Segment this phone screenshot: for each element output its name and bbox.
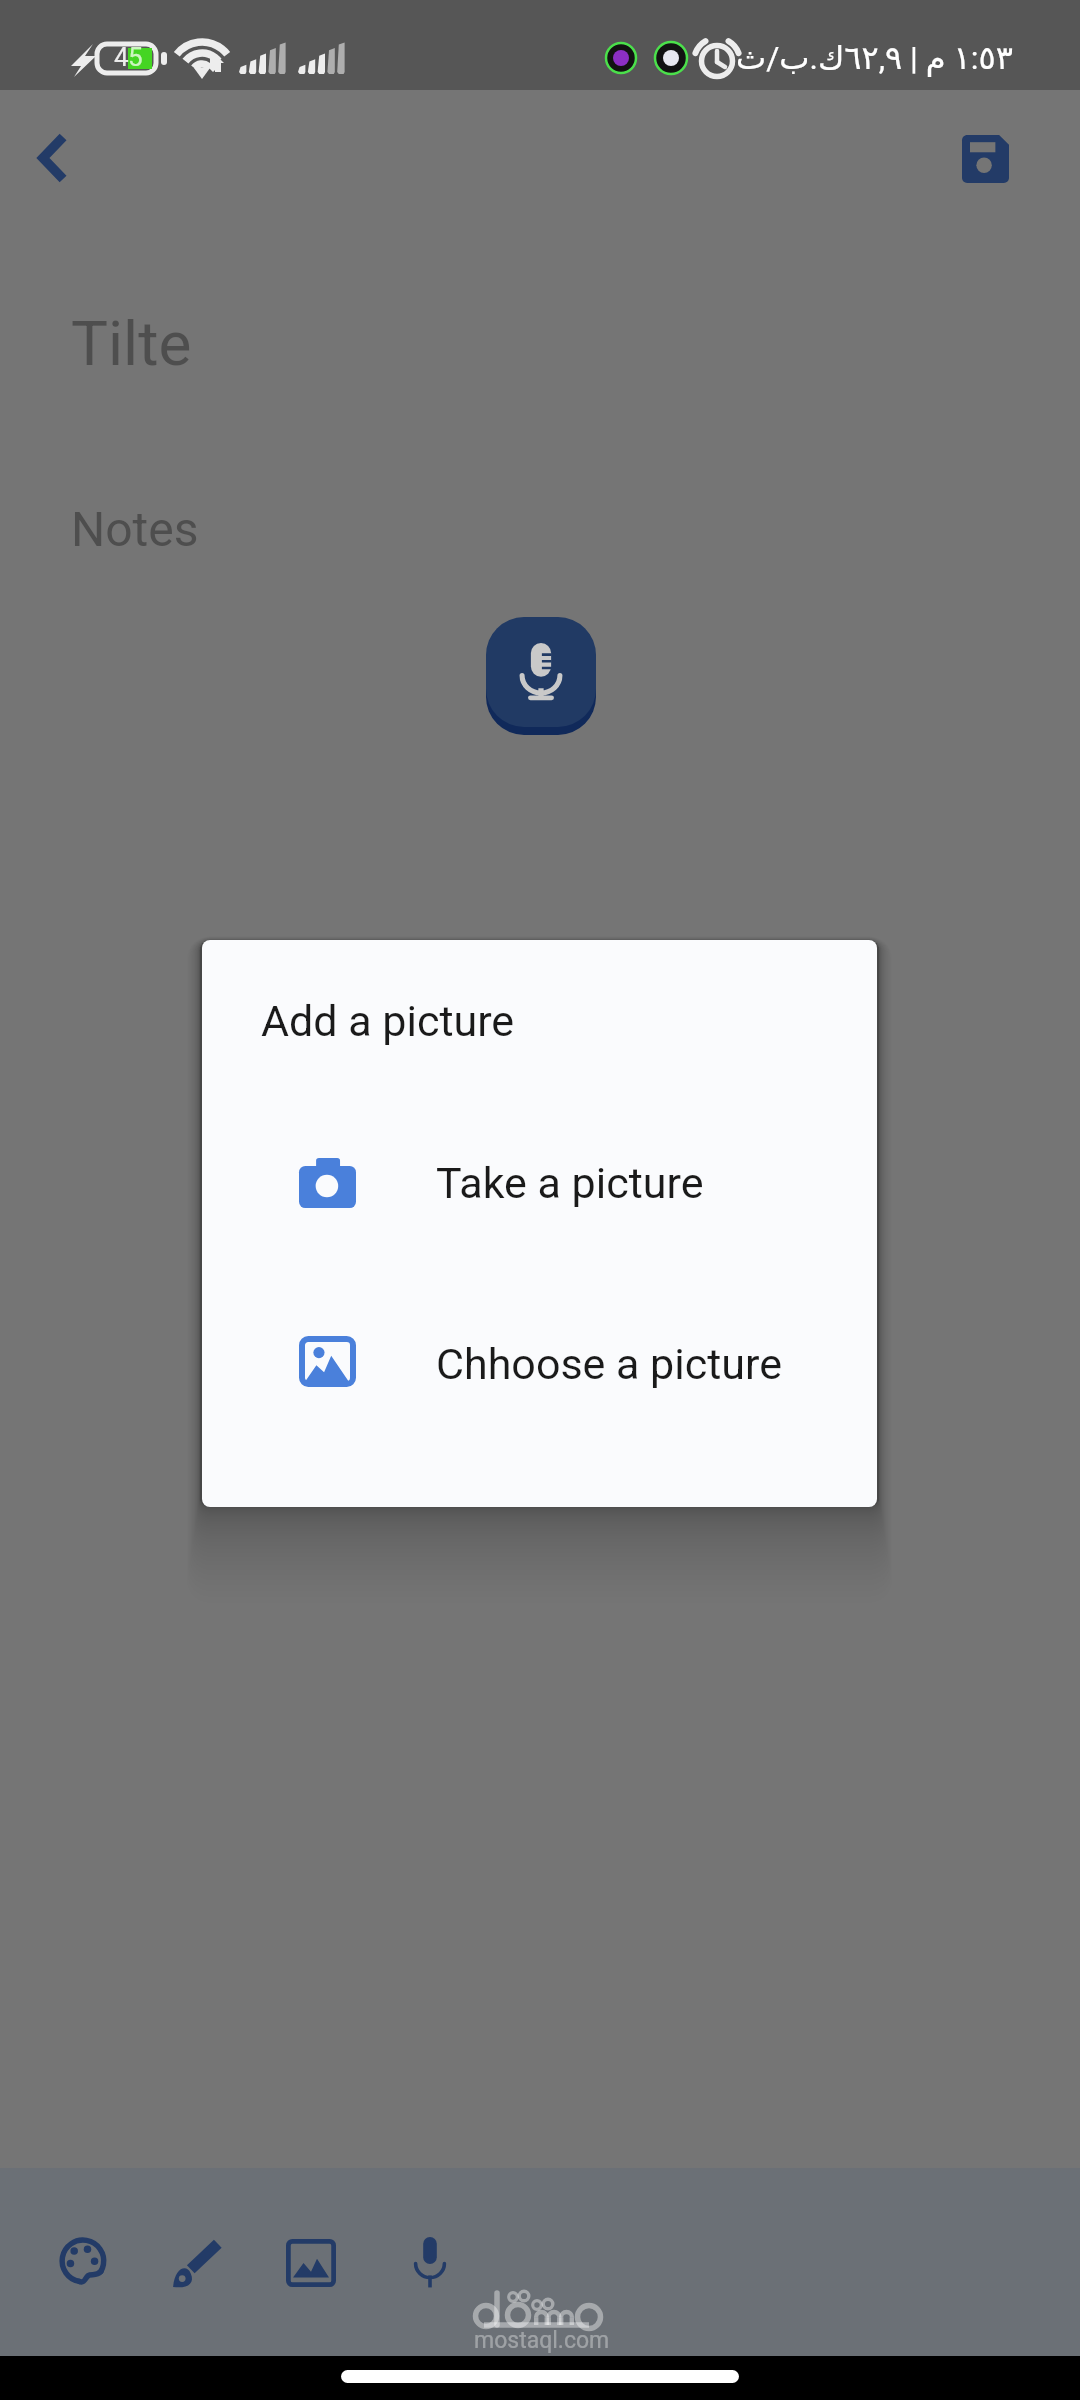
button[interactable]: Chhoose a picture (202, 1308, 877, 1412)
button[interactable]: Take a picture (202, 1130, 877, 1234)
button[interactable]: Add image (283, 2235, 339, 2291)
staticText: mostaql.com (474, 2327, 610, 2354)
staticText: Chhoose a picture (436, 1339, 782, 1389)
staticText: 5 (128, 42, 143, 72)
staticText: Notes (71, 501, 199, 557)
staticText: ١:٥٣ م | ٦٢,٩ك.ب/ث (736, 39, 1013, 77)
staticText: Add a picture (261, 996, 515, 1046)
button[interactable]: Record voice note (481, 612, 601, 740)
staticText: Take a picture (436, 1158, 704, 1208)
button[interactable]: Save (949, 123, 1021, 195)
button[interactable]: Color palette (57, 2235, 113, 2291)
button[interactable]: Voice note (402, 2235, 458, 2291)
button[interactable]: Back (17, 122, 89, 194)
staticText: Tilte (71, 307, 192, 380)
button[interactable]: Draw (169, 2235, 225, 2291)
staticText: 4 (114, 42, 129, 72)
